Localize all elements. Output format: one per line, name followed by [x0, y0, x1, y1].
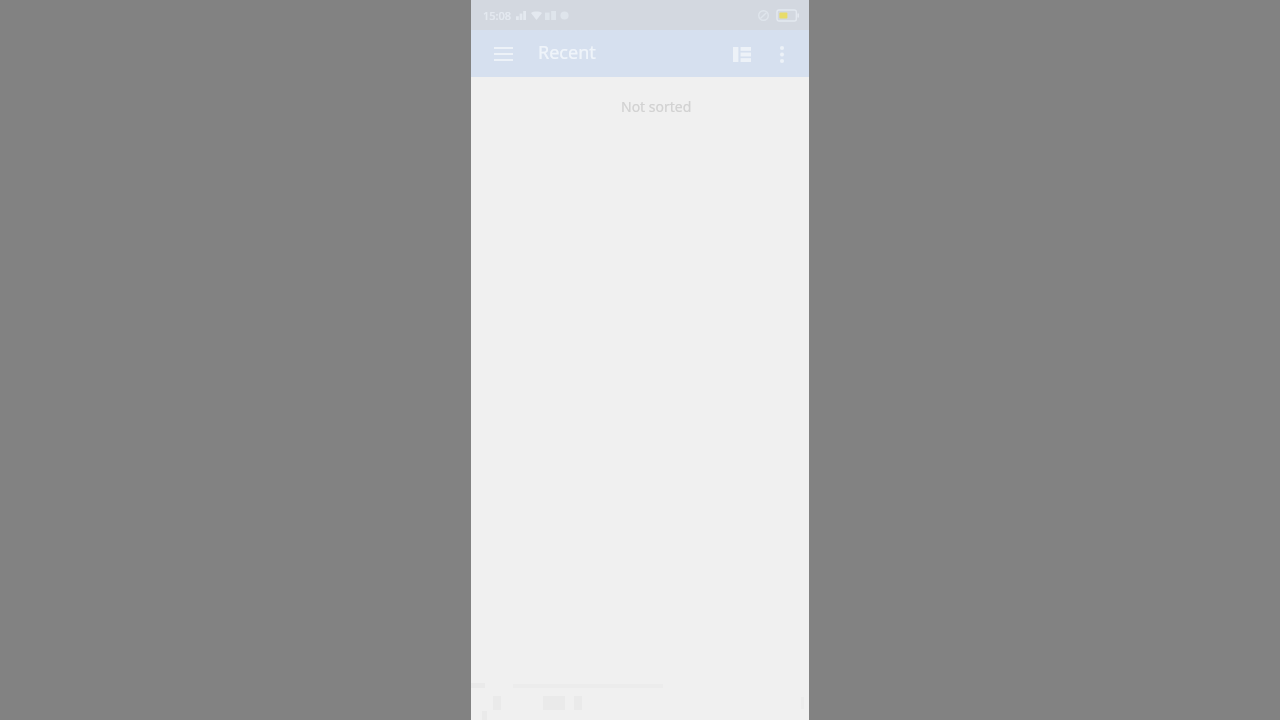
staticText: Not sorted [621, 97, 692, 116]
staticText: 15:08 [483, 8, 512, 23]
button[interactable]: Open navigation drawer [483, 34, 523, 74]
button[interactable]: Change view layout [722, 34, 762, 74]
button[interactable]: Not sorted [621, 97, 692, 116]
staticText: Recent [538, 40, 596, 65]
button[interactable]: More options [762, 34, 802, 74]
